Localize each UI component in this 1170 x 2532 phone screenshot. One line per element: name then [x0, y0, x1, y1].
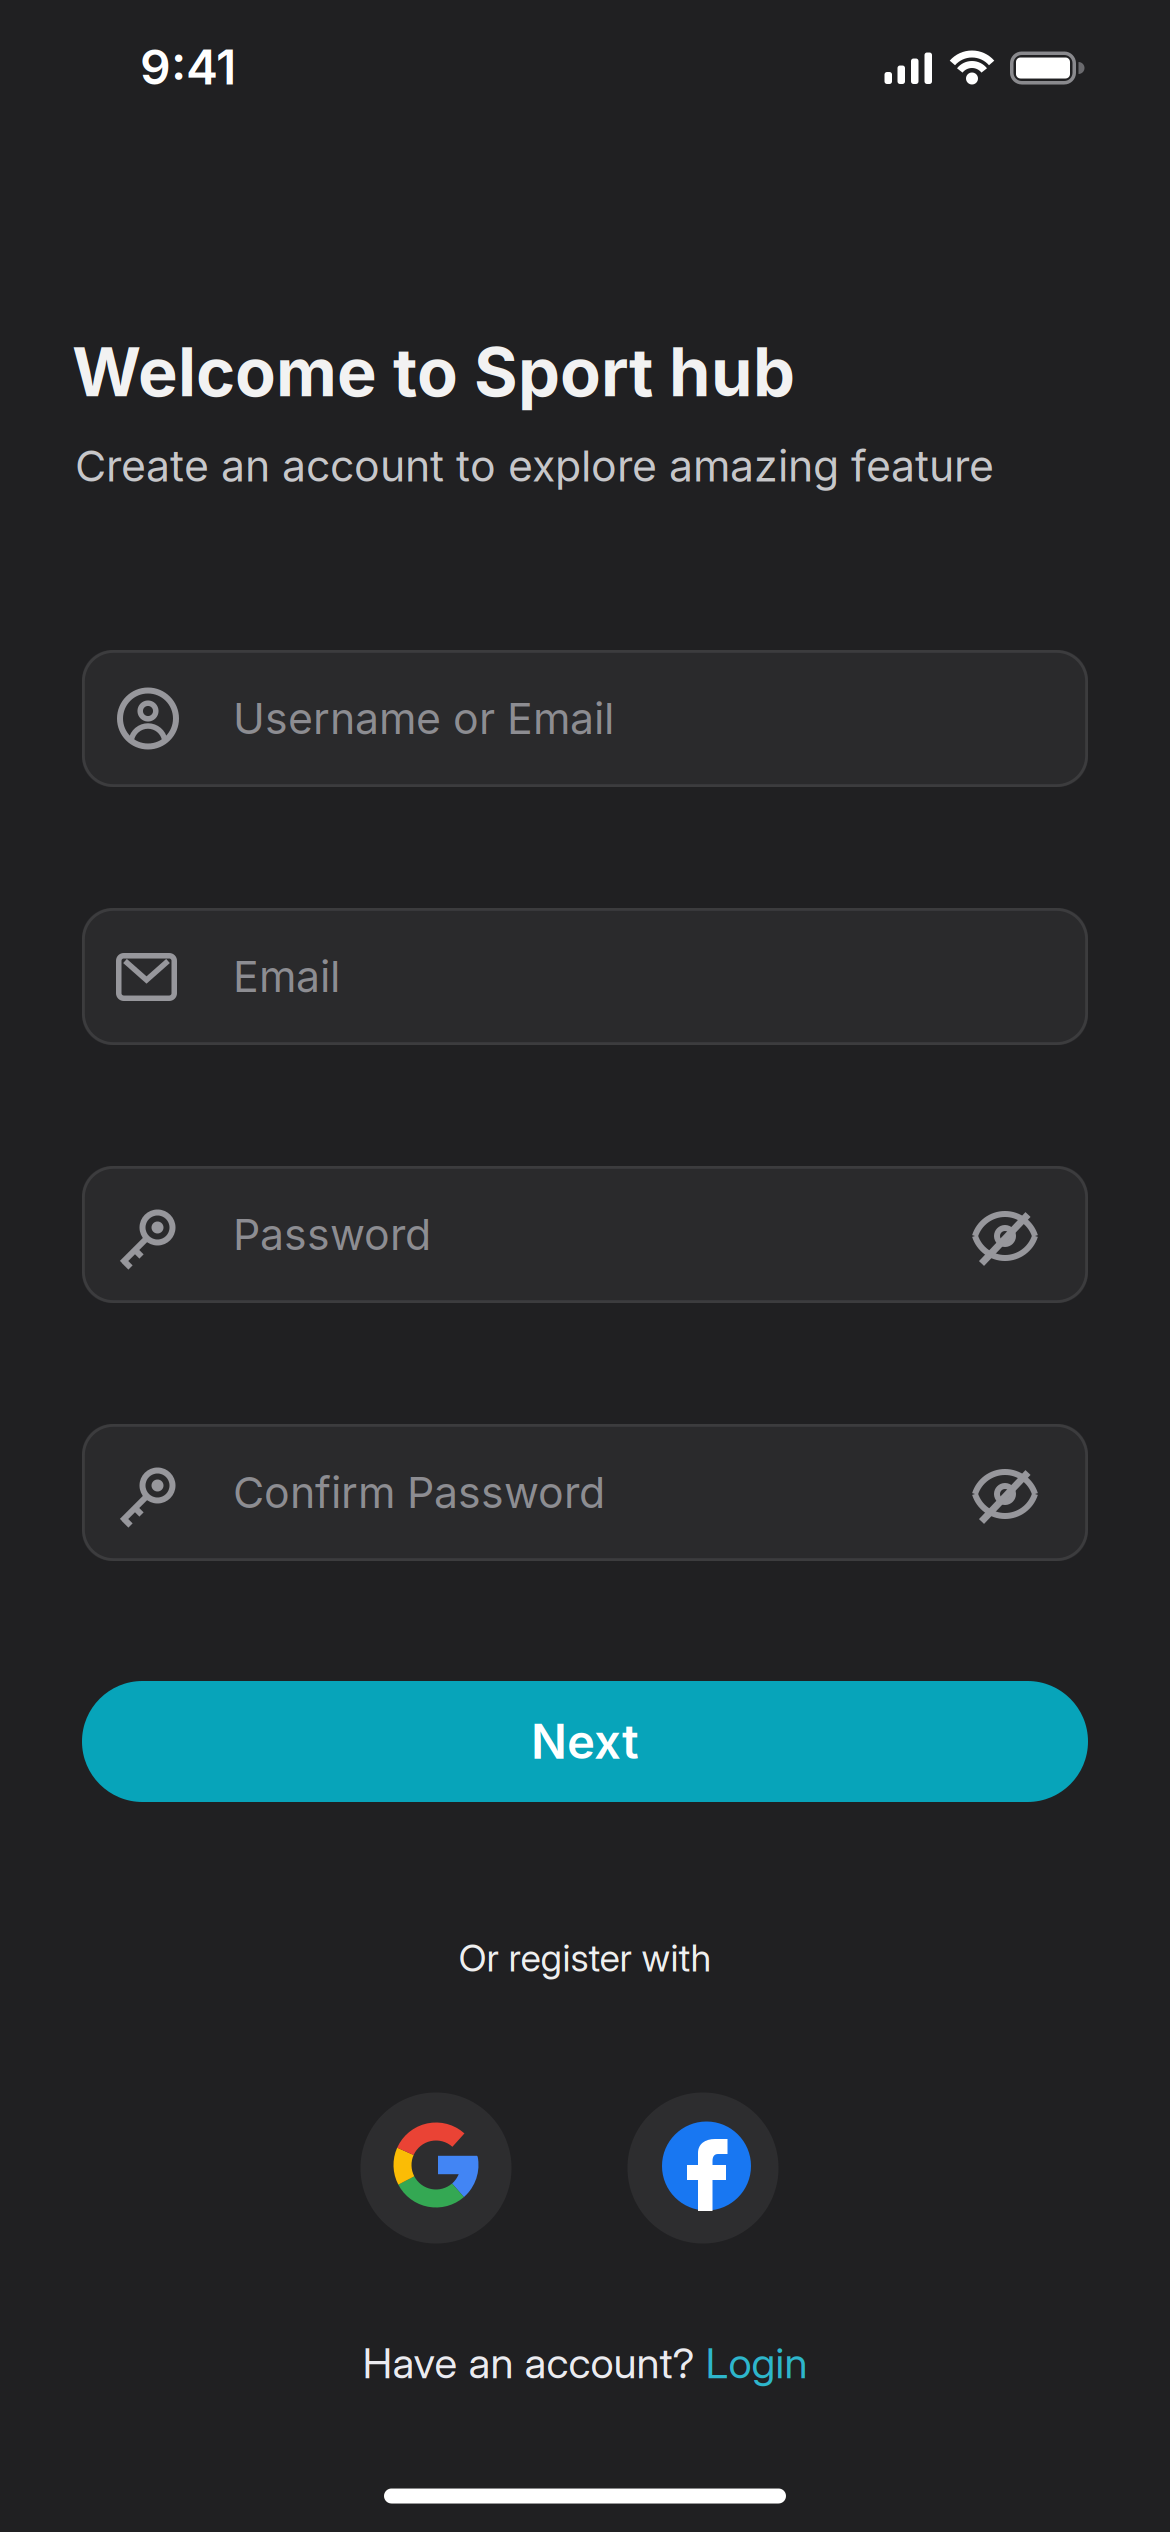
staticText: 9:41	[140, 38, 236, 96]
button[interactable]: Show password	[82, 1166, 1088, 1303]
staticText: Next	[531, 1713, 639, 1770]
button[interactable]: Next	[82, 1681, 1088, 1802]
button[interactable]: Show password	[82, 1424, 1088, 1561]
button[interactable]: Username or Email	[82, 650, 1088, 787]
button[interactable]: Confirm Password	[82, 1424, 1088, 1561]
staticText: Or register with	[458, 1935, 711, 1981]
staticText: Username or Email	[233, 693, 614, 744]
staticText: Login	[705, 2338, 807, 2388]
staticText: Create an account to explore amazing fea…	[75, 440, 994, 492]
staticText: Confirm Password	[233, 1467, 605, 1518]
staticText: Password	[233, 1209, 431, 1260]
button[interactable]: Email	[82, 908, 1088, 1045]
button[interactable]: Login	[705, 2338, 807, 2388]
button[interactable]: Register with Facebook	[627, 2092, 779, 2244]
staticText: Welcome to Sport hub	[72, 332, 795, 412]
button[interactable]: Register with Google	[360, 2092, 512, 2244]
button[interactable]: Password	[82, 1166, 1088, 1303]
staticText: Email	[233, 951, 340, 1002]
staticText: Have an account?	[362, 2338, 705, 2388]
